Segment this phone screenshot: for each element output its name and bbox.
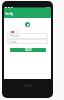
button[interactable]: NEXT (10, 48, 46, 52)
staticText: Verify (5, 12, 14, 16)
staticText: Code (9, 40, 17, 44)
button[interactable]: Verify (4, 8, 51, 18)
staticText: Phone (10, 34, 20, 38)
staticText: NEXT (25, 48, 32, 52)
button[interactable]: +1 (10, 30, 19, 34)
button[interactable]: Code (7, 39, 48, 44)
staticText: +1 (15, 30, 19, 34)
button[interactable]: Phone (7, 33, 48, 39)
